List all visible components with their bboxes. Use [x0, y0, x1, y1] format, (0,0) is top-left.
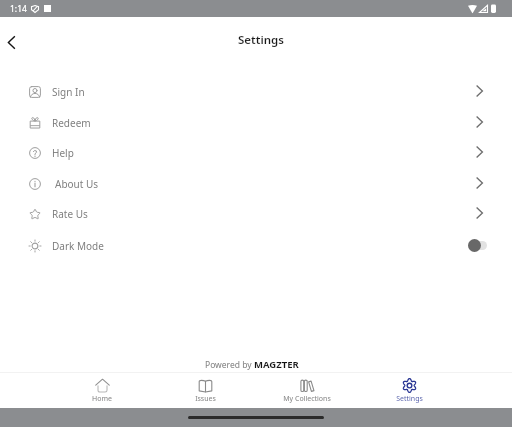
staticText: Powered by — [205, 359, 254, 371]
button[interactable]: Home — [51, 373, 153, 408]
button[interactable]: Settings — [358, 373, 460, 408]
staticText: Sign In — [52, 85, 85, 99]
button[interactable]: About Us — [0, 168, 512, 199]
staticText: Home — [92, 394, 112, 404]
staticText: Settings — [396, 394, 423, 404]
staticText: Dark Mode — [52, 239, 104, 253]
button[interactable]: Dark Mode toggle — [468, 239, 487, 252]
staticText: Redeem — [52, 116, 91, 130]
staticText: Rate Us — [52, 207, 88, 221]
staticText: About Us — [55, 177, 99, 191]
staticText: Help — [52, 146, 74, 160]
button[interactable]: Sign In — [0, 76, 512, 107]
button[interactable]: Rate Us — [0, 198, 512, 229]
staticText: Settings — [238, 32, 284, 48]
staticText: Issues — [195, 394, 216, 404]
button[interactable]: Help — [0, 137, 512, 168]
button[interactable]: My Collections — [256, 373, 358, 408]
staticText: 1:14 — [10, 3, 27, 15]
button[interactable]: Dark Mode — [0, 230, 512, 261]
button[interactable]: Issues — [154, 373, 256, 408]
button[interactable]: Back — [0, 25, 28, 59]
staticText: My Collections — [283, 394, 331, 404]
staticText: MAGZTER — [254, 358, 299, 371]
button[interactable]: Redeem — [0, 107, 512, 138]
